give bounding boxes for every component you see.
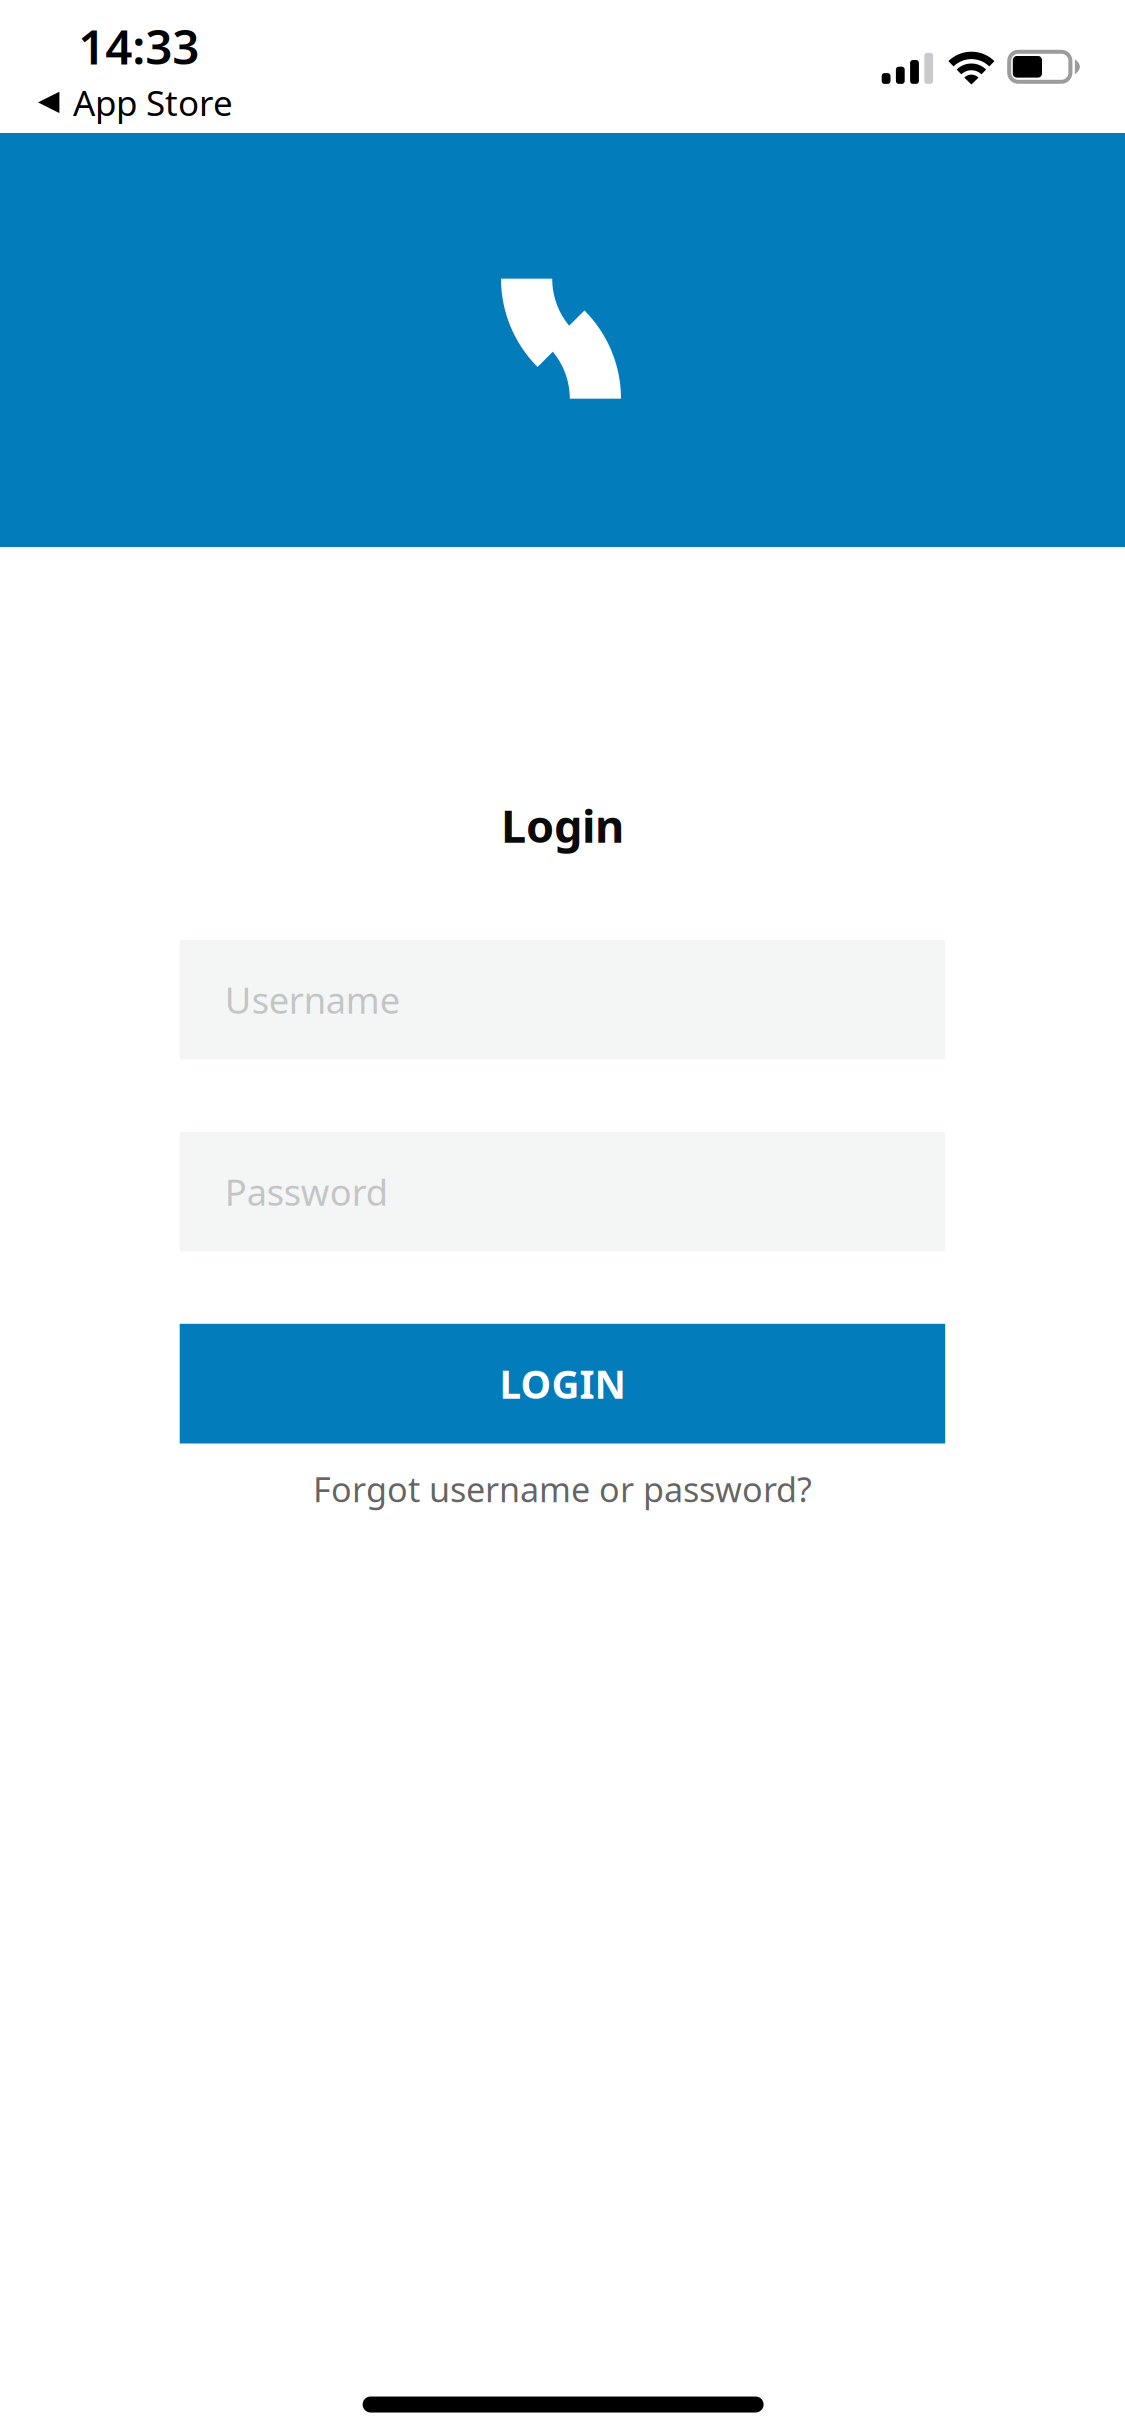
staticText: LOGIN bbox=[499, 1357, 625, 1410]
staticText: 14:33 bbox=[78, 14, 199, 78]
staticText: App Store bbox=[73, 79, 233, 126]
staticText: Forgot username or password? bbox=[313, 1466, 812, 1512]
button[interactable]: Username bbox=[180, 940, 945, 1060]
button[interactable]: Forgot username or password? bbox=[180, 1458, 945, 1520]
button[interactable]: Back to App Store bbox=[38, 83, 233, 121]
staticText: Username bbox=[225, 975, 400, 1024]
button[interactable]: Password bbox=[180, 1132, 945, 1252]
button[interactable]: LOGIN bbox=[180, 1324, 945, 1443]
staticText: Login bbox=[501, 795, 624, 856]
staticText: Password bbox=[225, 1167, 388, 1216]
